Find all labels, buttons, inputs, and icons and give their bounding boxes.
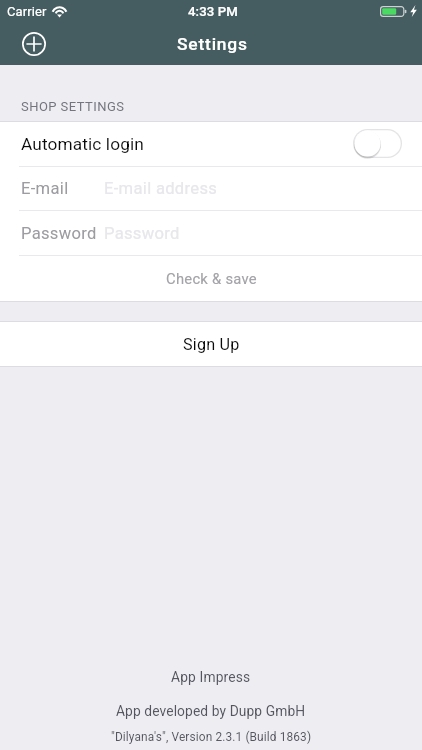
button[interactable]: Automatic login [0, 122, 422, 166]
button[interactable]: Sign Up [0, 322, 422, 366]
button[interactable]: Check & save [0, 256, 422, 301]
staticText: Sign Up [183, 335, 240, 354]
staticText: E-mail [21, 179, 69, 198]
staticText: Settings [177, 34, 248, 54]
staticText: Check & save [166, 270, 257, 287]
staticText: Password [104, 224, 180, 243]
staticText: Automatic login [21, 134, 144, 154]
staticText: SHOP SETTINGS [21, 99, 125, 114]
staticText: 4:33 PM [188, 4, 238, 19]
staticText: Password [21, 224, 97, 243]
button[interactable]: App Impress [159, 665, 263, 689]
staticText: E-mail address [104, 179, 218, 198]
button[interactable]: E-mail [0, 167, 422, 210]
staticText: Carrier [7, 4, 47, 19]
button[interactable]: Password [0, 211, 422, 255]
staticText: App developed by Dupp GmbH [116, 703, 306, 719]
staticText: App Impress [171, 669, 251, 685]
button[interactable]: Add [19, 29, 49, 59]
staticText: "Dilyana's", Version 2.3.1 (Build 1863) [111, 730, 312, 744]
button[interactable]: Automatic login toggle [353, 129, 402, 158]
